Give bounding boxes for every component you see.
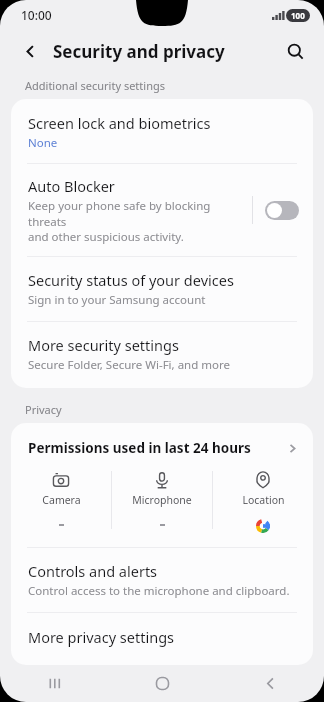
staticText: Auto Blocker xyxy=(28,176,115,196)
button[interactable]: More security settings xyxy=(11,322,313,388)
staticText: Additional security settings xyxy=(25,78,165,93)
button[interactable]: Home xyxy=(108,665,216,702)
button[interactable]: Camera xyxy=(11,471,111,526)
button[interactable]: Auto Blocker xyxy=(11,164,313,256)
staticText: Location xyxy=(242,493,285,507)
staticText: Screen lock and biometrics xyxy=(28,113,211,133)
button[interactable]: Screen lock and biometrics xyxy=(11,99,313,163)
staticText: Camera xyxy=(42,493,81,507)
staticText: Secure Folder, Secure Wi-Fi, and more xyxy=(28,357,230,373)
button[interactable]: Security status of your devices xyxy=(11,257,313,321)
staticText: Privacy xyxy=(25,402,62,417)
staticText: Control access to the microphone and cli… xyxy=(28,583,290,599)
button[interactable]: Location xyxy=(213,471,313,533)
button[interactable]: Back xyxy=(216,665,324,702)
staticText: More security settings xyxy=(28,335,179,355)
button[interactable]: More privacy settings xyxy=(11,613,313,665)
button[interactable]: Recents xyxy=(0,665,108,702)
staticText: Controls and alerts xyxy=(28,561,158,581)
button[interactable]: Auto Blocker toggle xyxy=(265,201,299,220)
staticText: None xyxy=(28,135,58,151)
button[interactable]: Microphone xyxy=(112,471,212,526)
button[interactable]: Search xyxy=(280,36,310,66)
staticText: Sign in to your Samsung account xyxy=(28,292,206,308)
staticText: More privacy settings xyxy=(28,627,174,647)
staticText: Keep your phone safe by blocking threats… xyxy=(28,198,242,244)
button[interactable]: Back xyxy=(16,37,44,65)
staticText: Microphone xyxy=(132,493,192,507)
button[interactable]: Controls and alerts xyxy=(11,548,313,612)
staticText: Security status of your devices xyxy=(28,270,234,290)
staticText: 100 xyxy=(291,10,305,21)
staticText: Permissions used in last 24 hours xyxy=(28,439,287,457)
staticText: Security and privacy xyxy=(53,40,225,63)
staticText: 10:00 xyxy=(21,7,52,23)
button[interactable]: Permissions used in last 24 hours xyxy=(11,423,313,467)
